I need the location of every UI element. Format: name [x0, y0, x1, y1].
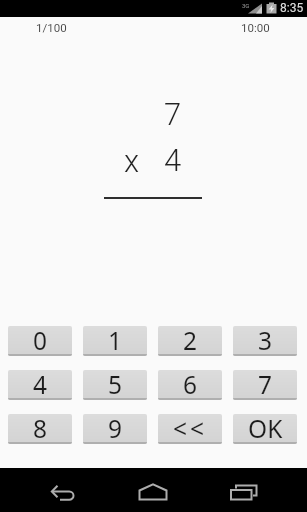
staticText: << [173, 414, 208, 442]
button[interactable]: 4 [8, 370, 72, 400]
button[interactable] [205, 468, 307, 512]
staticText: 8 [33, 414, 48, 442]
staticText: 8:35 [280, 1, 304, 15]
button[interactable]: 3 [233, 326, 297, 356]
button[interactable] [103, 468, 205, 512]
button[interactable]: 1 [83, 326, 147, 356]
staticText: 4 [164, 142, 182, 178]
button[interactable]: 0 [8, 326, 72, 356]
button[interactable]: << [158, 414, 222, 444]
staticText: 1/100 [36, 21, 67, 34]
button[interactable]: 9 [83, 414, 147, 444]
staticText: OK [248, 414, 283, 442]
staticText: 6 [183, 370, 198, 398]
button[interactable]: 5 [83, 370, 147, 400]
staticText: 0 [33, 326, 48, 354]
button[interactable] [0, 468, 103, 512]
staticText: 3G [242, 2, 250, 9]
staticText: 5 [108, 370, 123, 398]
staticText: 3 [258, 326, 273, 354]
button[interactable]: 6 [158, 370, 222, 400]
staticText: x [124, 143, 140, 179]
button[interactable]: 7 [233, 370, 297, 400]
staticText: 9 [108, 414, 123, 442]
staticText: 1 [108, 326, 123, 354]
button[interactable]: OK [233, 414, 297, 444]
staticText: 2 [183, 326, 198, 354]
staticText: 10:00 [241, 21, 270, 34]
staticText: 4 [33, 370, 48, 398]
button[interactable]: 8 [8, 414, 72, 444]
button[interactable]: 2 [158, 326, 222, 356]
staticText: 7 [164, 96, 182, 132]
staticText: 7 [258, 370, 273, 398]
